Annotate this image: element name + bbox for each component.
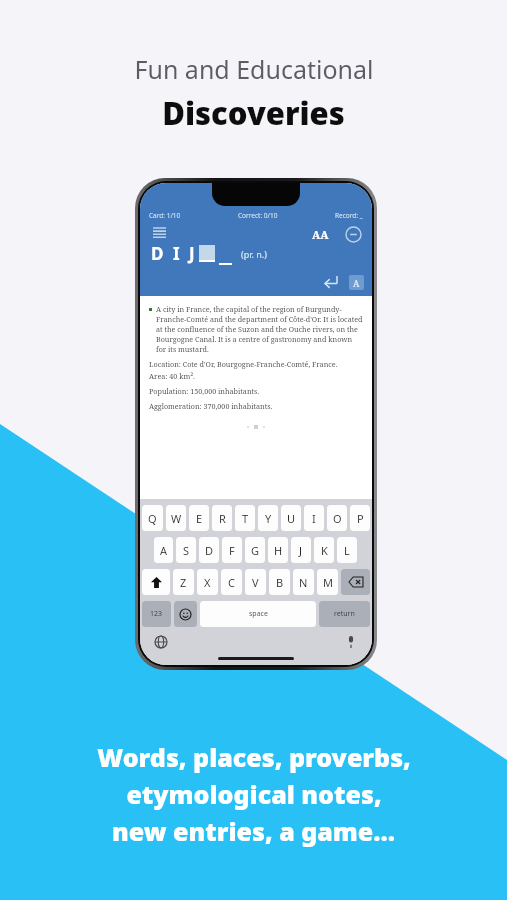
button[interactable]: N — [293, 569, 314, 595]
staticText: Words, places, proverbs, — [97, 740, 411, 774]
staticText: A — [160, 543, 168, 558]
staticText: Z — [180, 575, 187, 590]
staticText: F — [229, 543, 235, 558]
button[interactable]: G — [245, 537, 265, 563]
button[interactable]: Shift — [142, 569, 170, 595]
button[interactable]: C — [221, 569, 242, 595]
staticText: D — [205, 543, 214, 558]
staticText: E — [196, 511, 203, 526]
staticText: S — [183, 543, 190, 558]
button[interactable]: 123 — [142, 601, 171, 627]
staticText: V — [252, 575, 259, 590]
button[interactable]: H — [268, 537, 288, 563]
button[interactable]: X — [197, 569, 218, 595]
staticText: B — [276, 575, 284, 590]
button[interactable]: Q — [142, 505, 163, 531]
button[interactable]: L — [337, 537, 357, 563]
button[interactable]: Delete — [341, 569, 370, 595]
button[interactable]: T — [235, 505, 255, 531]
button[interactable]: M — [317, 569, 338, 595]
button[interactable]: F — [222, 537, 242, 563]
button[interactable]: Menu — [149, 224, 169, 244]
button[interactable]: S — [176, 537, 196, 563]
staticText: W — [171, 511, 182, 526]
staticText: X — [204, 575, 211, 590]
button[interactable]: U — [281, 505, 301, 531]
button[interactable]: K — [314, 537, 334, 563]
staticText: Location: Cote d'Or, Bourgogne-Franche-C… — [149, 359, 338, 369]
staticText: AA — [312, 227, 329, 242]
button[interactable]: Y — [258, 505, 278, 531]
staticText: I — [173, 242, 180, 265]
button[interactable]: Enter — [322, 273, 340, 291]
staticText: H — [274, 543, 283, 558]
staticText: return — [334, 609, 355, 619]
staticText: space — [249, 609, 268, 619]
staticText: Record: _ — [335, 211, 363, 220]
staticText: D — [151, 242, 164, 265]
staticText: new entries, a game... — [112, 814, 395, 848]
staticText: J — [299, 543, 303, 558]
staticText: 123 — [150, 609, 163, 619]
staticText: M — [323, 575, 333, 590]
button[interactable]: Hint — [343, 224, 363, 244]
button[interactable]: A — [154, 537, 173, 563]
staticText: Fun and Educational — [134, 52, 374, 86]
staticText: C — [228, 575, 235, 590]
staticText: R — [219, 511, 226, 526]
button[interactable]: R — [212, 505, 232, 531]
staticText: K — [321, 543, 328, 558]
staticText: Correct: 0/10 — [238, 211, 278, 220]
button[interactable]: Z — [173, 569, 194, 595]
button[interactable]: W — [166, 505, 186, 531]
staticText: etymological notes, — [126, 777, 382, 811]
button[interactable]: O — [327, 505, 347, 531]
staticText: P — [357, 511, 364, 526]
staticText: Q — [148, 511, 157, 526]
button[interactable]: P — [350, 505, 370, 531]
staticText: O — [333, 511, 342, 526]
staticText: U — [287, 511, 296, 526]
button[interactable]: Text size — [309, 223, 331, 245]
staticText: J — [189, 242, 195, 265]
staticText: N — [299, 575, 308, 590]
staticText: A city in France, the capital of the reg… — [156, 304, 363, 354]
button[interactable]: Dictation — [342, 633, 360, 651]
button[interactable]: B — [269, 569, 290, 595]
staticText: Area: 40 km². — [149, 371, 195, 381]
button[interactable]: J — [291, 537, 311, 563]
button[interactable]: D — [199, 537, 219, 563]
staticText: G — [251, 543, 260, 558]
button[interactable]: I — [304, 505, 324, 531]
button[interactable]: V — [245, 569, 266, 595]
button[interactable]: Emoji — [174, 601, 197, 627]
staticText: Card: 1/10 — [149, 211, 181, 220]
button[interactable]: Letter A — [349, 275, 364, 290]
button[interactable]: return — [319, 601, 370, 627]
staticText: I — [312, 511, 316, 526]
staticText: Y — [265, 511, 272, 526]
staticText: A — [353, 277, 360, 289]
staticText: Population: 150,000 inhabitants. — [149, 386, 260, 396]
staticText: (pr. n.) — [241, 248, 267, 260]
button[interactable]: space — [200, 601, 316, 627]
staticText: T — [242, 511, 249, 526]
staticText: L — [344, 543, 350, 558]
staticText: Agglomeration: 370,000 inhabitants. — [149, 401, 273, 411]
button[interactable]: Change language — [152, 633, 170, 651]
button[interactable]: E — [189, 505, 209, 531]
staticText: Discoveries — [162, 92, 345, 134]
